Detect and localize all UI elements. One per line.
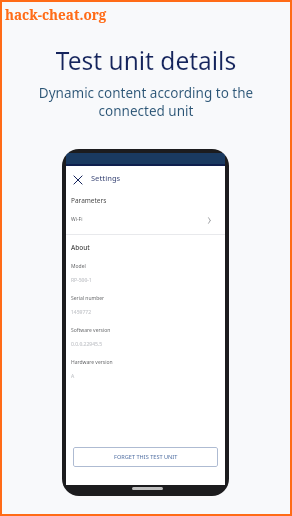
staticText: RP-500-1 [71,277,92,284]
staticText: Test unit details [2,44,290,77]
staticText: FORGET THIS TEST UNIT [114,453,178,461]
staticText: Dynamic content according to the connect… [2,84,290,120]
staticText: Wi-Fi [71,216,83,223]
staticText: 1459772 [71,309,92,316]
staticText: hack-cheat.org [5,6,107,24]
staticText: A [71,373,75,380]
button[interactable]: Wi-Fi [66,198,225,235]
staticText: Hardware version [71,359,113,366]
staticText: Software version [71,327,111,334]
staticText: Model [71,263,86,270]
staticText: About [71,243,90,252]
staticText: Serial number [71,295,105,302]
button[interactable]: Close [68,170,88,190]
staticText: 0.0.0.22945.5 [71,341,103,348]
button[interactable]: FORGET THIS TEST UNIT [73,447,218,467]
staticText: Settings [91,173,121,183]
staticText: Parameters [71,196,107,205]
